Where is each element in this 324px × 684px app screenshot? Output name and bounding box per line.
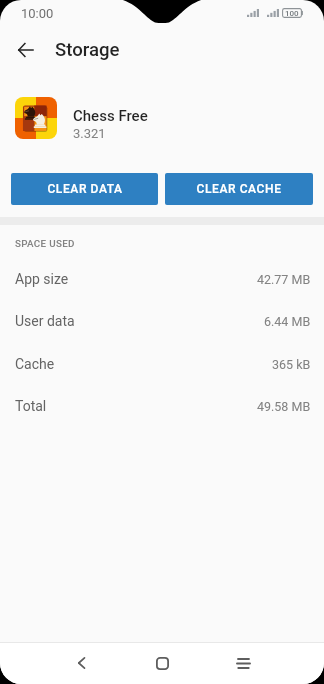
button[interactable]: CLEAR DATA bbox=[11, 173, 158, 205]
button[interactable]: Total bbox=[0, 385, 324, 427]
staticText: 49.58 MB bbox=[257, 399, 311, 414]
button[interactable]: Recent apps bbox=[225, 645, 261, 681]
staticText: Cache bbox=[15, 356, 55, 372]
staticText: 10:00 bbox=[21, 6, 54, 21]
staticText: SPACE USED bbox=[15, 238, 75, 249]
staticText: App size bbox=[15, 271, 69, 287]
staticText: 3.321 bbox=[73, 126, 106, 141]
button[interactable]: Back bbox=[63, 645, 99, 681]
staticText: Storage bbox=[55, 39, 120, 61]
button[interactable]: Navigate up bbox=[7, 32, 43, 68]
button[interactable]: Home bbox=[144, 645, 180, 681]
staticText: CLEAR CACHE bbox=[196, 182, 282, 196]
button[interactable]: Cache bbox=[0, 343, 324, 385]
staticText: Total bbox=[15, 398, 47, 414]
staticText: CLEAR DATA bbox=[47, 182, 123, 196]
button[interactable]: App size bbox=[0, 258, 324, 300]
staticText: 6.44 MB bbox=[264, 314, 311, 329]
button[interactable]: CLEAR CACHE bbox=[165, 173, 313, 205]
button[interactable]: User data bbox=[0, 300, 324, 342]
staticText: 42.77 MB bbox=[257, 272, 311, 287]
staticText: 365 kB bbox=[272, 357, 311, 372]
staticText: 100 bbox=[285, 9, 299, 18]
staticText: Chess Free bbox=[73, 107, 148, 125]
staticText: User data bbox=[15, 313, 75, 329]
